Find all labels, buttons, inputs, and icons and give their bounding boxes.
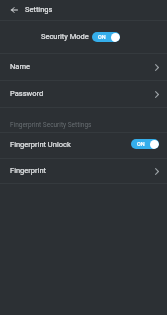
button[interactable]: Back <box>5 1 23 19</box>
staticText: ON <box>137 141 145 147</box>
staticText: Password <box>10 89 44 98</box>
staticText: Fingerprint Unlock <box>10 140 71 149</box>
button[interactable]: Name <box>0 54 167 80</box>
staticText: Fingerprint Security Settings <box>10 121 92 129</box>
button[interactable]: Security Mode <box>0 21 167 53</box>
staticText: ON <box>98 34 106 40</box>
button[interactable]: Toggle On <box>92 32 120 42</box>
staticText: Settings <box>25 5 53 14</box>
staticText: Fingerprint <box>10 166 47 175</box>
staticText: Name <box>10 62 30 71</box>
button[interactable]: Password <box>0 81 167 107</box>
button[interactable]: Fingerprint <box>0 159 167 183</box>
staticText: Security Mode <box>41 32 89 41</box>
button[interactable]: Toggle On <box>131 139 159 149</box>
button[interactable]: Fingerprint Unlock <box>0 133 167 158</box>
